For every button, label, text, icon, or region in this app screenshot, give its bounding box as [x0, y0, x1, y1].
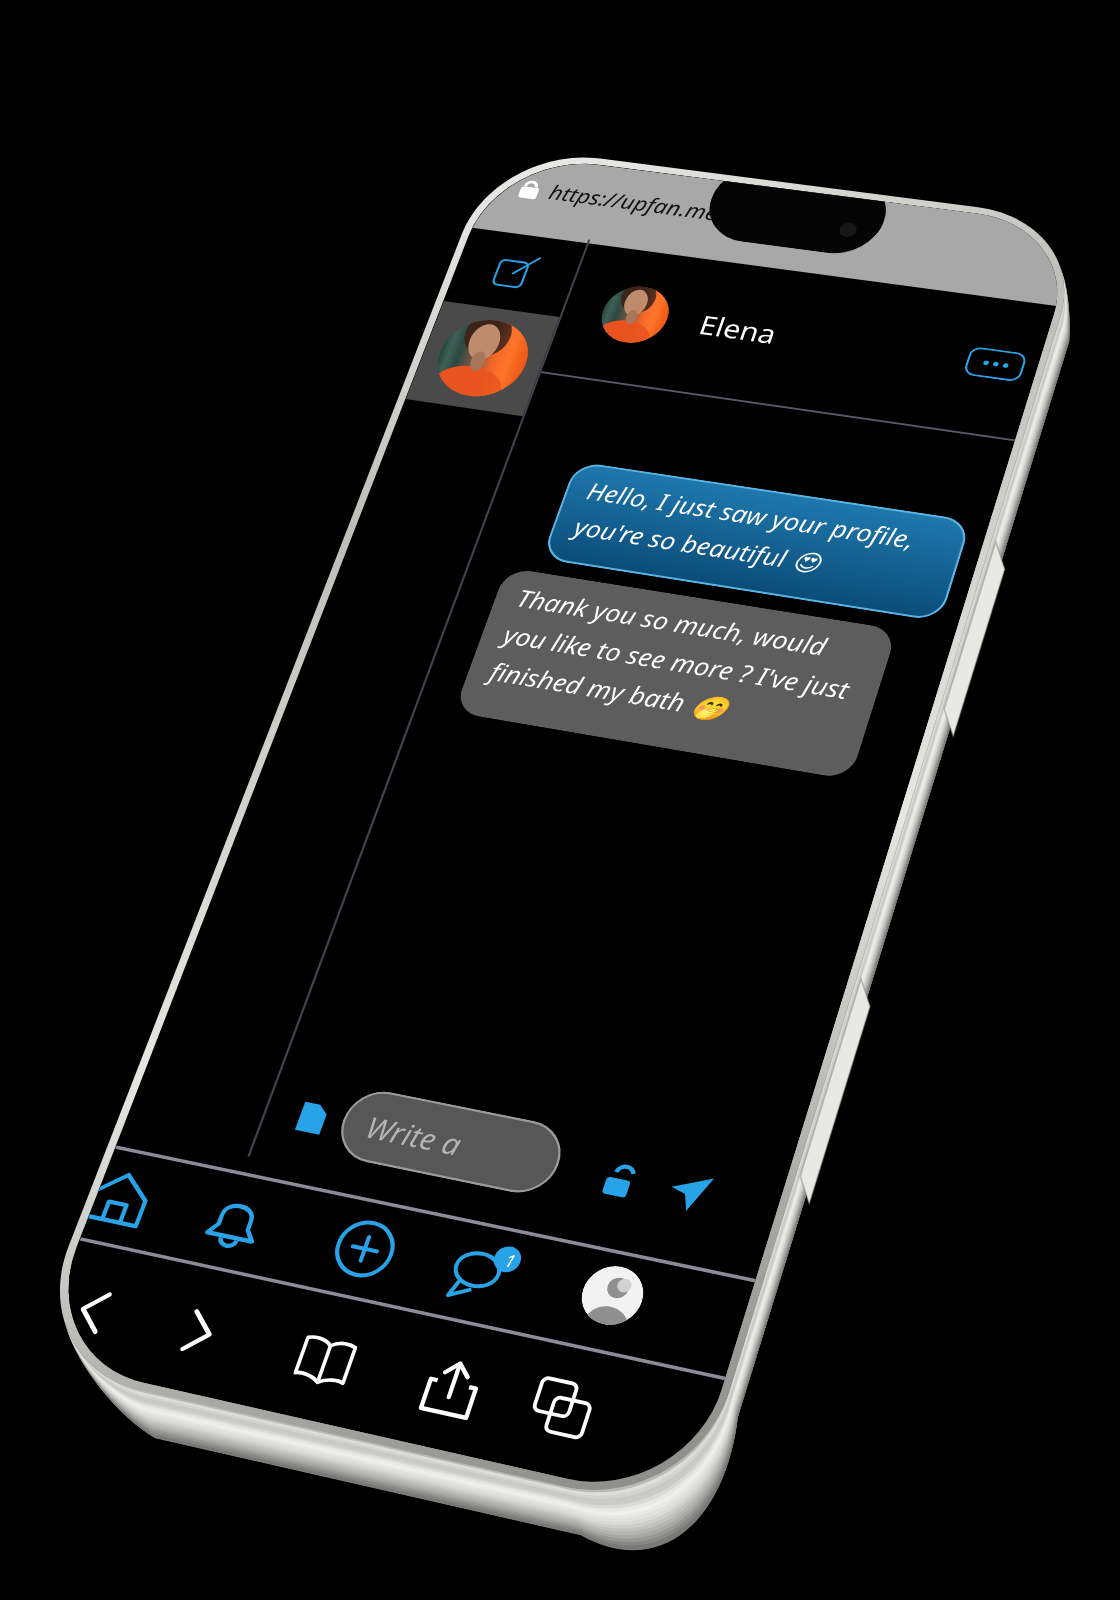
- button[interactable]: Bookmarks: [272, 1303, 379, 1418]
- button[interactable]: Profile: [556, 1236, 670, 1355]
- button[interactable]: Share: [398, 1329, 507, 1445]
- staticText: Elena: [693, 290, 783, 368]
- button[interactable]: Notifications: [182, 1165, 288, 1280]
- staticText: Thank you so much, would you like to see…: [483, 513, 873, 810]
- button[interactable]: https://upfan.me: [472, 22, 1086, 435]
- button[interactable]: Create: [311, 1191, 419, 1307]
- button[interactable]: Write a: [329, 1050, 574, 1233]
- staticText: Hello, I just saw your profile, you're s…: [568, 408, 924, 658]
- button[interactable]: Attach file: [284, 1088, 340, 1148]
- staticText: Write a: [360, 1091, 469, 1179]
- button[interactable]: Send: [656, 1158, 723, 1227]
- staticText: https://upfan.me: [545, 140, 724, 263]
- button[interactable]: Forward: [148, 1277, 249, 1387]
- button[interactable]: Elena: [586, 212, 883, 445]
- button[interactable]: Tabs: [506, 1349, 618, 1467]
- button[interactable]: More options: [961, 334, 1030, 395]
- button[interactable]: Home: [83, 1147, 172, 1252]
- button[interactable]: New message: [490, 243, 542, 299]
- button[interactable]: Back: [45, 1257, 144, 1365]
- button[interactable]: [406, 276, 561, 441]
- staticText: 1: [501, 1246, 521, 1274]
- button[interactable]: Messages: [428, 1211, 543, 1333]
- button[interactable]: Unlock: [589, 1147, 651, 1213]
